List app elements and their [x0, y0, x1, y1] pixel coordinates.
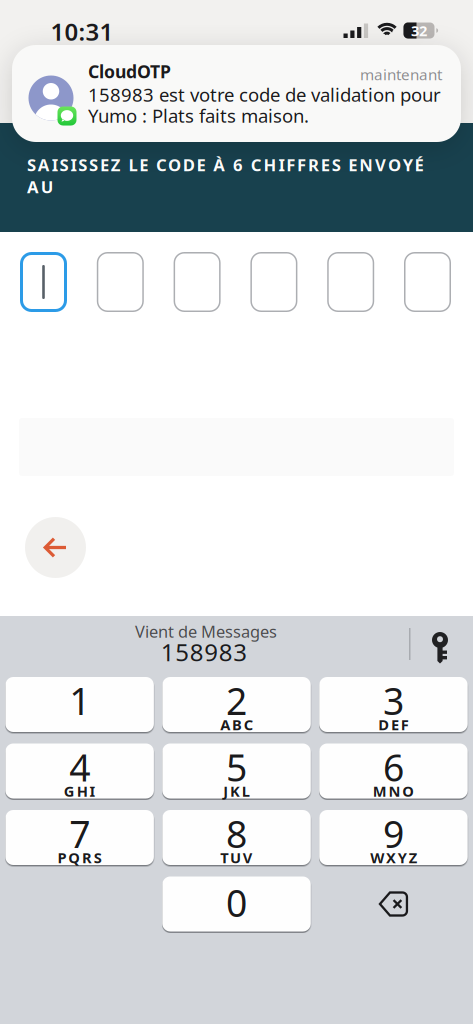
button[interactable]: Code digit — [174, 252, 221, 312]
button[interactable]: Code digit — [250, 252, 297, 312]
staticText: maintenant — [360, 64, 442, 85]
button[interactable]: 7 — [5, 810, 154, 865]
staticText: Yumo : Plats faits maison. — [88, 103, 309, 128]
button[interactable]: 4 — [5, 743, 154, 798]
button[interactable]: Code digit — [327, 252, 374, 312]
button[interactable]: 0 — [162, 876, 311, 931]
staticText: 2 — [226, 676, 247, 725]
staticText: PQRS — [57, 848, 102, 867]
staticText: 3 — [383, 676, 404, 725]
staticText: MNO — [373, 781, 414, 801]
button[interactable]: 5 — [162, 743, 311, 798]
staticText: 158983 — [161, 636, 247, 668]
staticText: TUV — [220, 848, 253, 867]
staticText: 4 — [69, 742, 90, 792]
button[interactable]: Code digit — [97, 252, 144, 312]
staticText: Vient de Messages — [135, 620, 277, 643]
button[interactable]: 1 — [5, 677, 154, 732]
staticText: ABC — [220, 715, 253, 734]
staticText: AU — [27, 175, 54, 198]
button[interactable]: Code digit — [20, 252, 67, 312]
staticText: 7 — [69, 809, 90, 858]
staticText: 32 — [411, 21, 427, 40]
staticText: 0 — [226, 878, 247, 927]
staticText: CloudOTP — [88, 59, 171, 83]
button[interactable]: 2 — [162, 677, 311, 732]
button[interactable]: Code digit — [404, 252, 451, 312]
staticText: WXYZ — [370, 848, 417, 867]
button[interactable]: 8 — [162, 810, 311, 865]
staticText: JKL — [223, 781, 250, 801]
staticText: GHI — [64, 781, 95, 801]
button[interactable]: Use code 158983 — [0, 616, 410, 670]
button[interactable]: 9 — [319, 810, 468, 865]
staticText: 6 — [383, 742, 404, 792]
button[interactable]: 6 — [319, 743, 468, 798]
button[interactable]: Delete — [319, 876, 468, 931]
staticText: 8 — [226, 809, 247, 858]
button[interactable]: Passwords — [413, 621, 467, 675]
staticText: 9 — [383, 809, 404, 858]
staticText: 1 — [69, 676, 90, 725]
staticText: 158983 est votre code de validation pour — [88, 82, 441, 107]
button[interactable]: Back — [25, 517, 86, 578]
staticText: 5 — [226, 742, 247, 792]
staticText: DEF — [378, 715, 409, 734]
button[interactable]: 3 — [319, 677, 468, 732]
button[interactable]: CloudOTP notification — [12, 45, 461, 142]
staticText: SAISISSEZ LE CODE À 6 CHIFFRES ENVOYÉ — [27, 153, 424, 176]
staticText: 10:31 — [50, 15, 113, 48]
